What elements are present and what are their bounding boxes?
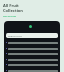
- button[interactable]: [6, 58, 58, 61]
- staticText: Search fruit: [8, 34, 22, 37]
- button[interactable]: [6, 52, 58, 55]
- button[interactable]: [6, 47, 58, 50]
- button[interactable]: Profile: [29, 25, 32, 28]
- button[interactable]: See all fruits: [3, 15, 17, 18]
- button[interactable]: [6, 63, 58, 66]
- button[interactable]: [6, 69, 58, 72]
- button[interactable]: [6, 41, 58, 44]
- button[interactable]: Search: [6, 33, 58, 38]
- staticText: All Fruit Collection: [3, 3, 23, 13]
